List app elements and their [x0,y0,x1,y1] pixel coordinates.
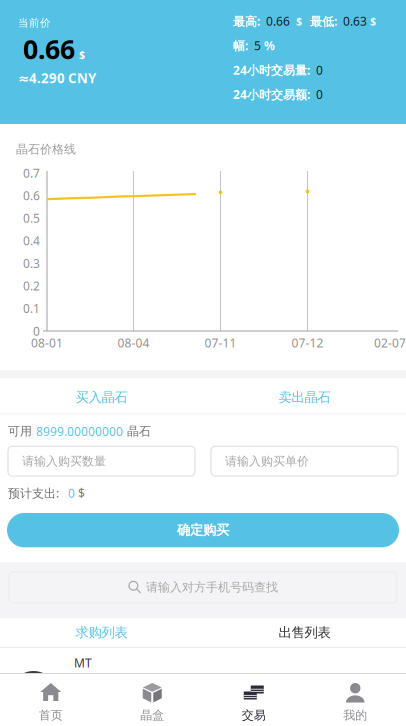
button[interactable]: 首页 [0,674,101,726]
staticText: 最高: [233,13,260,29]
button[interactable]: 晶盒 [101,674,203,726]
staticText: 晶石价格线 [16,142,76,157]
staticText: 24小时交易量: [233,62,310,78]
staticText: 24小时交易额: [233,86,310,102]
button[interactable]: 交易 [203,674,304,726]
staticText: 8999.00000000 [36,423,123,439]
staticText: 5 [248,38,264,53]
button[interactable]: 我的 [304,674,406,726]
staticText: $ [79,47,85,62]
staticText: 0.5 [23,210,40,226]
staticText: 0 [33,323,40,339]
button[interactable]: 求购列表 [0,618,203,647]
button[interactable]: 确定购买 [7,513,399,547]
staticText: 0.6 [23,188,40,203]
staticText: 幅: [233,38,248,53]
staticText: 请输入对方手机号码查找 [146,580,278,595]
staticText: 0.4 [23,233,40,249]
staticText: 0 [310,86,323,102]
staticText: 请输入购买单价 [225,454,309,468]
staticText: 请输入购买数量 [22,454,106,468]
staticText: ≈4.290 CNY [18,69,96,87]
staticText: 0.7 [23,165,40,181]
staticText: 02-07 [374,335,406,351]
staticText: 预计支出: [8,485,62,501]
staticText: 08-01 [31,335,63,351]
button[interactable]: 请输入对方手机号码查找 [0,562,406,603]
staticText: 买入晶石 [75,389,127,405]
button[interactable]: 买入晶石 [0,381,203,413]
staticText: $ [78,485,85,501]
staticText: 0.63 [337,13,370,29]
staticText: $ [296,14,302,28]
button[interactable]: MT [0,618,406,718]
staticText: 最低: [302,13,337,29]
staticText: 0.3 [23,255,40,271]
staticText: $ [370,14,376,28]
staticText: 首页 [39,708,63,723]
staticText: 我的 [343,708,367,723]
staticText: 08-04 [117,335,149,351]
staticText: 交易 [242,708,266,723]
staticText: 0.66 [260,13,296,29]
staticText: 0 [310,62,323,78]
staticText: 0.1 [23,300,40,316]
staticText: 求购列表 [75,624,127,641]
staticText: 当前价 [18,16,51,29]
staticText: 可用 [8,424,36,439]
staticText: MT [74,655,92,671]
staticText: 晶石 [123,424,151,439]
staticText: 07-11 [204,335,236,351]
staticText: 0.2 [23,278,40,294]
staticText: 卖出晶石 [278,389,330,405]
staticText: 07-12 [291,335,323,351]
staticText: 确定购买 [177,522,229,538]
button[interactable]: 卖出晶石 [203,381,406,413]
staticText: 0.66 [23,31,75,67]
staticText: 出售列表 [278,624,330,641]
staticText: 晶盒 [140,708,164,723]
button[interactable]: 出售列表 [203,618,406,647]
staticText: % [264,38,275,53]
staticText: 0 [62,485,78,501]
